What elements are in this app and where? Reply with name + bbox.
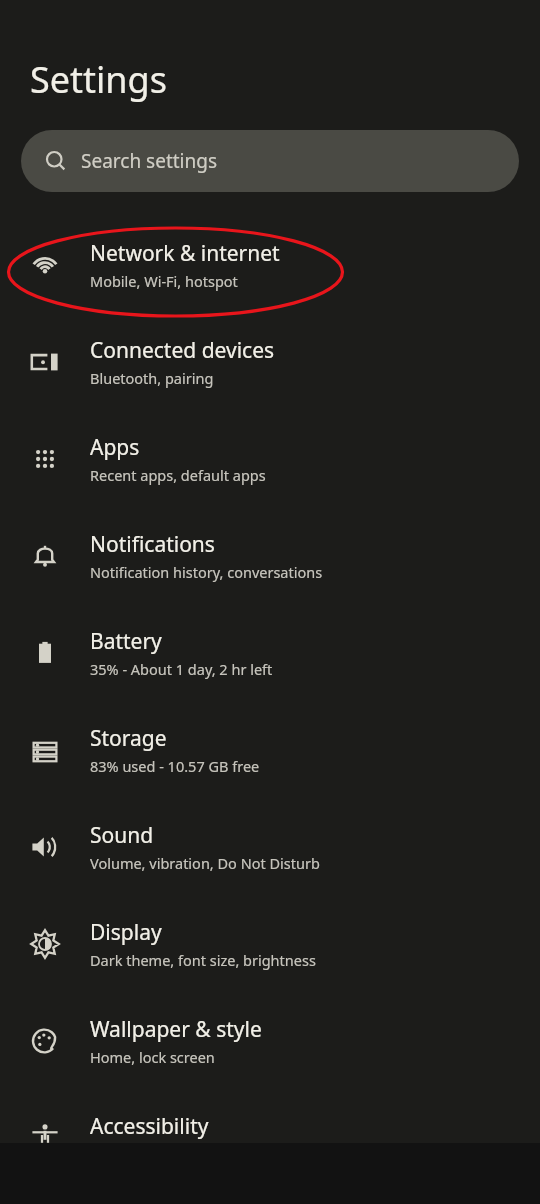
staticText: Search settings [81, 148, 218, 174]
staticText: 35% - About 1 day, 2 hr left [90, 659, 273, 679]
button[interactable]: Display [0, 895, 540, 992]
button[interactable]: Accessibility [0, 1089, 540, 1186]
staticText: Recent apps, default apps [90, 465, 266, 485]
button[interactable]: Sound [0, 798, 540, 895]
staticText: Storage [90, 724, 167, 753]
staticText: Notifications [90, 530, 215, 559]
staticText: Volume, vibration, Do Not Disturb [90, 853, 320, 873]
button[interactable]: Search settings [21, 130, 519, 192]
staticText: Dark theme, font size, brightness [90, 950, 316, 970]
button[interactable]: Notifications [0, 507, 540, 604]
staticText: Display [90, 918, 162, 947]
button[interactable]: Storage [0, 701, 540, 798]
staticText: Sound [90, 821, 154, 850]
staticText: Wallpaper & style [90, 1015, 262, 1044]
staticText: Bluetooth, pairing [90, 368, 214, 388]
staticText: Battery [90, 627, 162, 656]
button[interactable]: Apps [0, 410, 540, 507]
staticText: Mobile, Wi-Fi, hotspot [90, 271, 238, 291]
staticText: Apps [90, 433, 140, 462]
staticText: Connected devices [90, 336, 275, 365]
staticText: 83% used - 10.57 GB free [90, 756, 260, 776]
button[interactable]: Battery [0, 604, 540, 701]
staticText: Settings [30, 55, 167, 104]
button[interactable]: Wallpaper & style [0, 992, 540, 1089]
staticText: Notification history, conversations [90, 562, 323, 582]
staticText: Network & internet [90, 239, 280, 268]
button[interactable]: Connected devices [0, 313, 540, 410]
button[interactable]: Network & internet [0, 216, 540, 313]
staticText: Home, lock screen [90, 1047, 215, 1067]
staticText: Accessibility [90, 1112, 209, 1141]
